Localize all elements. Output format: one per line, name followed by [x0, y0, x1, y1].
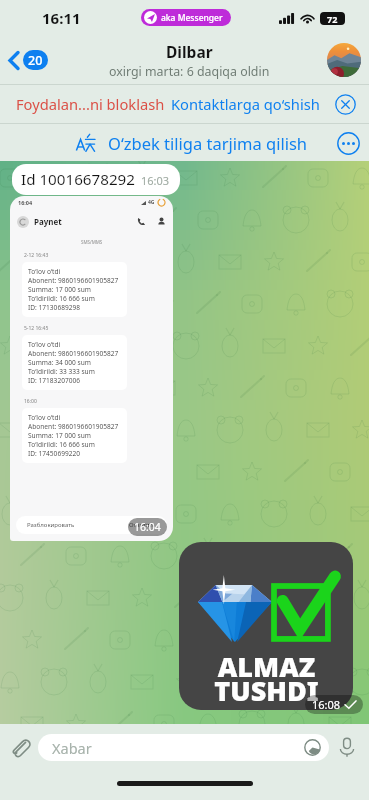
staticText: ALMAZ TUSHDI: [214, 648, 319, 709]
staticText: O‘zbek tiliga tarjima qilish: [108, 132, 308, 154]
staticText: 16:04: [134, 520, 161, 534]
staticText: To‘ldirildi: 16 666 sum: [28, 294, 95, 303]
staticText: 5-12 16:45: [24, 325, 49, 332]
button[interactable]: Attach: [5, 732, 35, 762]
staticText: 16:08: [312, 697, 341, 712]
staticText: oxirgi marta: 6 daqiqa oldin: [109, 63, 270, 80]
staticText: 16:04: [18, 199, 33, 206]
staticText: Summa: 17 000 sum: [28, 431, 91, 440]
button[interactable]: Back: [5, 46, 52, 74]
staticText: 20: [28, 52, 43, 69]
staticText: To‘ldirildi: 16 666 sum: [28, 440, 95, 449]
staticText: ID: 17130689298: [28, 303, 81, 312]
staticText: 16:00: [24, 398, 37, 405]
staticText: 72: [327, 13, 338, 25]
staticText: aka Messenger: [161, 12, 223, 24]
staticText: Ответить: [129, 521, 156, 529]
staticText: ID: 17450699220: [28, 449, 81, 458]
staticText: 16:03: [141, 173, 170, 188]
staticText: 16:11: [42, 8, 81, 28]
button[interactable]: Profile photo: [327, 43, 361, 77]
button[interactable]: 16:04: [10, 196, 173, 541]
staticText: Kontaktlarga qo‘shish: [171, 94, 320, 114]
staticText: 2-12 16:43: [24, 252, 49, 259]
staticText: Xabar: [52, 738, 92, 758]
button[interactable]: Kontaktlarga qo‘shish: [171, 88, 320, 120]
staticText: To‘lov o‘tdi: [28, 267, 61, 276]
button[interactable]: Voice message: [333, 733, 361, 761]
staticText: Foydalan...ni bloklash: [16, 94, 165, 114]
staticText: Abonent: 9860196601905827: [28, 349, 119, 358]
button[interactable]: Xabar: [38, 734, 329, 761]
button[interactable]: Id 10016678292: [12, 164, 180, 195]
staticText: ID: 17183207006: [28, 376, 81, 385]
button[interactable]: More options: [335, 130, 361, 156]
staticText: Summa: 34 000 sum: [28, 358, 91, 367]
staticText: SMS/MMS: [81, 239, 103, 245]
staticText: Abonent: 9860196601905827: [28, 422, 119, 431]
button[interactable]: Dismiss: [332, 91, 358, 117]
staticText: Summa: 17 000 sum: [28, 285, 91, 294]
staticText: To‘lov o‘tdi: [28, 413, 61, 422]
button[interactable]: Foydalan...ni bloklash: [16, 88, 165, 120]
staticText: To‘lov o‘tdi: [28, 340, 61, 349]
button[interactable]: O‘zbek tiliga tarjima qilish: [76, 132, 308, 154]
staticText: Id 10016678292: [21, 169, 135, 190]
staticText: Разблокировать: [27, 521, 75, 529]
staticText: Abonent: 9860196601905827: [28, 276, 119, 285]
staticText: To‘ldirildi: 33 333 sum: [28, 367, 95, 376]
staticText: 4G: [148, 199, 155, 206]
staticText: Paynet: [34, 216, 62, 227]
staticText: Dilbar: [166, 41, 213, 62]
button[interactable]: ALMAZ TUSHDI: [179, 542, 353, 710]
